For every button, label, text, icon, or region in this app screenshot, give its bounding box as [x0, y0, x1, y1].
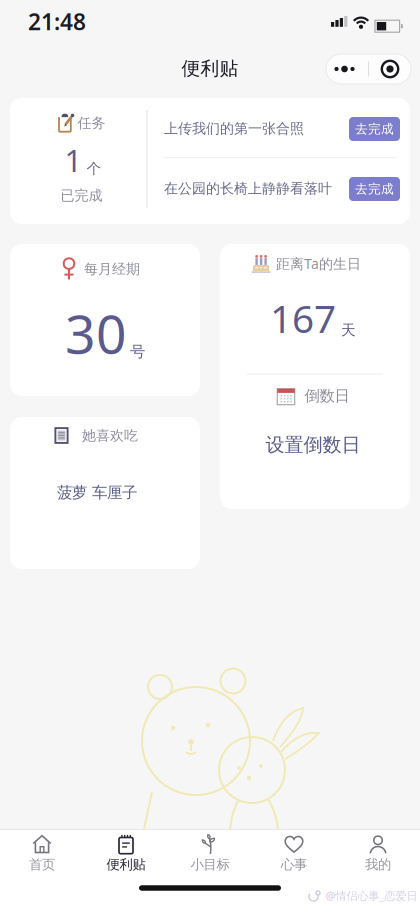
- button[interactable]: 心事: [252, 831, 336, 875]
- staticText: 我的: [365, 856, 391, 873]
- staticText: 她喜欢吃: [82, 427, 138, 444]
- staticText: 菠萝 车厘子: [57, 483, 137, 502]
- button[interactable]: 她喜欢吃: [10, 417, 200, 569]
- button[interactable]: 小目标: [168, 831, 252, 875]
- staticText: 小目标: [190, 856, 229, 873]
- staticText: 167: [270, 292, 336, 344]
- button[interactable]: 倒数日: [220, 374, 410, 509]
- staticText: 个: [86, 159, 101, 178]
- button[interactable]: 每月经期: [10, 244, 200, 396]
- staticText: 设置倒数日: [265, 433, 360, 457]
- button[interactable]: 首页: [0, 831, 84, 875]
- button[interactable]: 去完成: [349, 117, 400, 141]
- staticText: 天: [341, 321, 356, 339]
- staticText: 上传我们的第一张合照: [164, 120, 304, 137]
- staticText: 便利贴: [106, 856, 145, 873]
- staticText: 便利贴: [181, 57, 238, 80]
- staticText: 在公园的长椅上静静看落叶: [164, 180, 332, 197]
- staticText: 21:48: [28, 6, 86, 37]
- staticText: 号: [130, 342, 145, 361]
- staticText: 去完成: [355, 121, 394, 137]
- staticText: 已完成: [60, 187, 102, 204]
- button[interactable]: 便利贴: [84, 831, 168, 875]
- button[interactable]: 我的: [336, 831, 420, 875]
- staticText: 倒数日: [304, 386, 349, 406]
- button[interactable]: More: [326, 54, 368, 84]
- button[interactable]: Close: [368, 54, 411, 84]
- staticText: 30: [65, 297, 127, 369]
- staticText: 距离Ta的生日: [276, 254, 361, 273]
- staticText: 去完成: [355, 181, 394, 197]
- staticText: @情侣心事_恋爱日: [325, 888, 417, 903]
- staticText: 首页: [29, 856, 55, 873]
- staticText: 心事: [281, 856, 307, 873]
- staticText: 每月经期: [84, 260, 140, 278]
- staticText: 任务: [77, 114, 105, 132]
- button[interactable]: 距离Ta的生日: [220, 244, 410, 370]
- staticText: 1: [64, 139, 82, 181]
- button[interactable]: 去完成: [349, 177, 400, 201]
